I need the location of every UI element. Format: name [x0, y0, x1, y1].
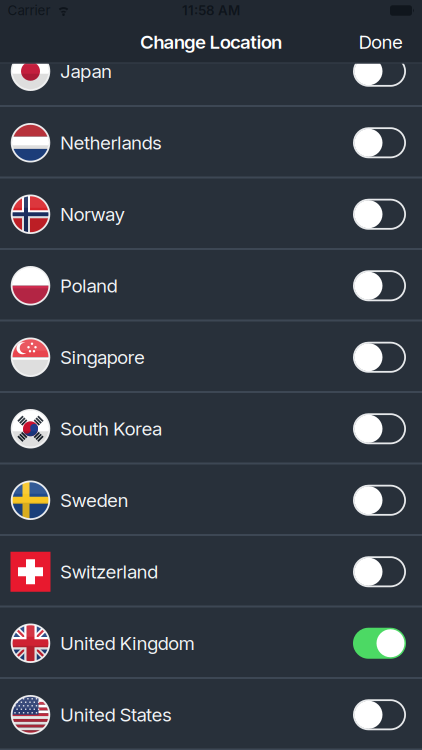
- staticText: United Kingdom: [60, 632, 194, 654]
- staticText: Norway: [60, 203, 124, 225]
- button[interactable]: United Kingdom toggle: [353, 628, 406, 659]
- button[interactable]: Singapore: [0, 321, 422, 393]
- button[interactable]: South Korea toggle: [353, 413, 406, 444]
- button[interactable]: Singapore toggle: [353, 342, 406, 373]
- button[interactable]: Japan: [0, 35, 422, 107]
- staticText: South Korea: [60, 418, 162, 440]
- button[interactable]: Poland: [0, 250, 422, 321]
- button[interactable]: Netherlands toggle: [353, 127, 406, 158]
- staticText: Carrier: [7, 3, 50, 18]
- button[interactable]: Norway: [0, 178, 422, 250]
- button[interactable]: Sweden: [0, 464, 422, 536]
- button[interactable]: Japan toggle: [353, 56, 406, 87]
- button[interactable]: United Kingdom: [0, 607, 422, 679]
- button[interactable]: Switzerland toggle: [353, 556, 406, 587]
- button[interactable]: Poland toggle: [353, 270, 406, 301]
- staticText: Change Location: [140, 31, 282, 53]
- staticText: Poland: [60, 275, 117, 297]
- staticText: Singapore: [60, 346, 145, 368]
- button[interactable]: Sweden toggle: [353, 485, 406, 516]
- staticText: Switzerland: [60, 561, 158, 583]
- button[interactable]: Norway toggle: [353, 199, 406, 230]
- button[interactable]: South Korea: [0, 393, 422, 464]
- staticText: United States: [60, 704, 172, 726]
- staticText: Japan: [60, 60, 112, 82]
- button[interactable]: United States: [0, 679, 422, 750]
- button[interactable]: Switzerland: [0, 536, 422, 607]
- staticText: Done: [358, 31, 403, 53]
- button[interactable]: Done: [358, 31, 403, 53]
- staticText: Sweden: [60, 489, 128, 511]
- button[interactable]: United States toggle: [353, 699, 406, 730]
- button[interactable]: Netherlands: [0, 107, 422, 178]
- staticText: 11:58 AM: [182, 3, 240, 18]
- staticText: Netherlands: [60, 132, 162, 154]
